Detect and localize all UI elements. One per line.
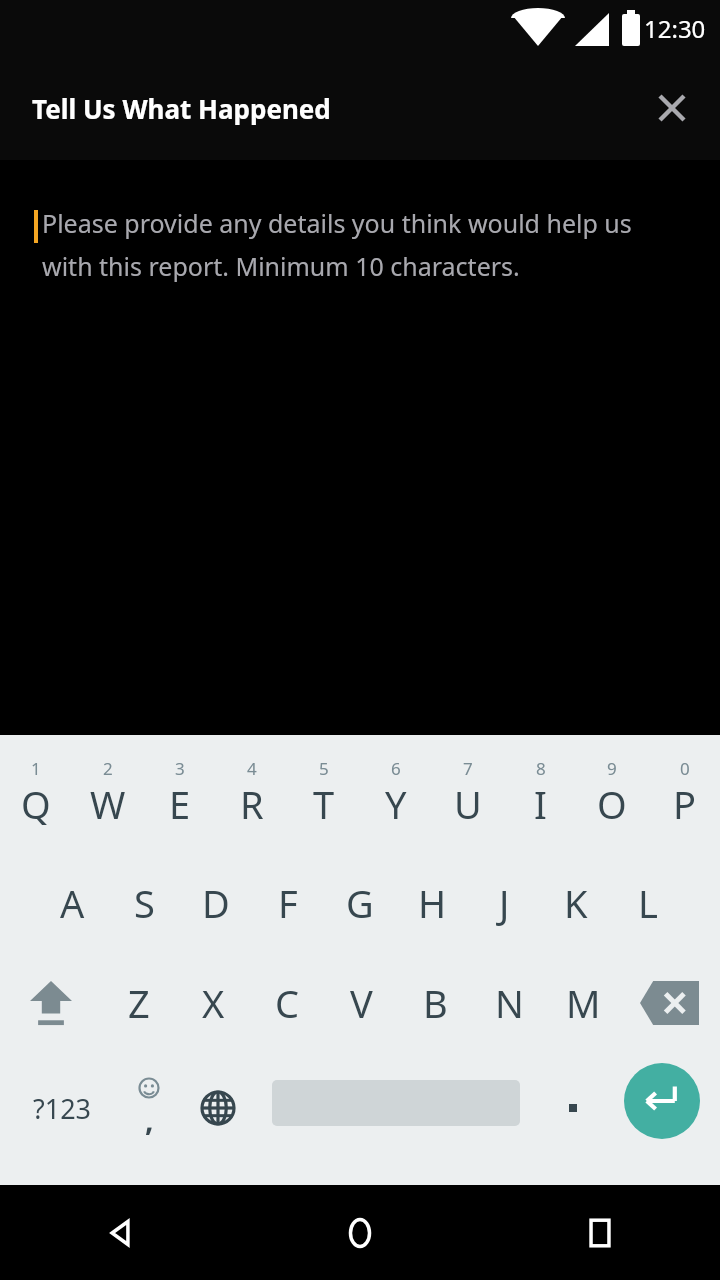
button[interactable]: V <box>324 953 398 1053</box>
staticText: 1 <box>31 757 41 780</box>
button[interactable]: Period <box>540 1053 606 1163</box>
button[interactable]: 4 <box>216 735 288 853</box>
button[interactable]: Backspace <box>620 953 720 1053</box>
button[interactable]: Home <box>240 1185 480 1280</box>
staticText: E <box>169 778 191 830</box>
button[interactable]: Change language <box>186 1053 250 1163</box>
button[interactable]: 1 <box>0 735 72 853</box>
button[interactable]: 5 <box>288 735 360 853</box>
staticText: O <box>597 778 627 830</box>
staticText: 9 <box>607 757 617 780</box>
staticText: 5 <box>319 757 329 780</box>
staticText: T <box>313 778 335 830</box>
staticText: A <box>60 877 85 929</box>
staticText: J <box>499 877 510 929</box>
button[interactable]: D <box>180 853 252 953</box>
button[interactable]: ?123 <box>6 1053 118 1163</box>
button[interactable]: Back <box>0 1185 240 1280</box>
staticText: W <box>90 778 126 830</box>
staticText: Z <box>128 977 150 1029</box>
staticText: , <box>145 1099 154 1140</box>
button[interactable]: L <box>612 853 684 953</box>
button[interactable]: 2 <box>72 735 144 853</box>
staticText: Q <box>21 778 51 830</box>
button[interactable]: B <box>398 953 472 1053</box>
staticText: C <box>275 977 300 1029</box>
button[interactable]: 0 <box>648 735 720 853</box>
button[interactable]: 7 <box>432 735 504 853</box>
staticText: 2 <box>103 757 113 780</box>
staticText: F <box>278 877 298 929</box>
button[interactable]: Recent apps <box>480 1185 720 1280</box>
button[interactable]: Enter <box>624 1063 700 1139</box>
staticText: G <box>346 877 374 929</box>
staticText: ?123 <box>33 1090 92 1127</box>
staticText: U <box>454 778 482 830</box>
staticText: D <box>202 877 230 929</box>
staticText: R <box>240 778 264 830</box>
button[interactable]: Z <box>101 953 176 1053</box>
button[interactable]: N <box>472 953 546 1053</box>
staticText: 0 <box>680 757 690 780</box>
staticText: 7 <box>463 757 473 780</box>
staticText: 3 <box>175 757 185 780</box>
staticText: M <box>566 977 601 1029</box>
staticText: V <box>350 977 373 1029</box>
button[interactable]: Comma <box>118 1053 180 1163</box>
button[interactable]: X <box>176 953 250 1053</box>
button[interactable]: C <box>250 953 324 1053</box>
staticText: B <box>423 977 448 1029</box>
staticText: Y <box>385 778 407 830</box>
staticText: K <box>564 877 588 929</box>
button[interactable]: 8 <box>504 735 576 853</box>
staticText: L <box>638 877 658 929</box>
staticText: 6 <box>391 757 401 780</box>
button[interactable]: G <box>324 853 396 953</box>
button[interactable]: A <box>36 853 108 953</box>
button[interactable]: Shift <box>0 953 101 1053</box>
staticText: I <box>534 778 547 830</box>
staticText: 4 <box>247 757 257 780</box>
staticText: 12:30 <box>644 12 706 45</box>
staticText: Please provide any details you think wou… <box>42 206 658 283</box>
staticText: 8 <box>536 757 546 780</box>
staticText: S <box>134 877 155 929</box>
button[interactable]: J <box>468 853 540 953</box>
staticText: N <box>495 977 524 1029</box>
staticText: X <box>202 977 225 1029</box>
button[interactable]: M <box>546 953 620 1053</box>
button[interactable]: Close <box>646 82 698 134</box>
button[interactable]: Please provide any details you think wou… <box>0 160 720 735</box>
staticText: Tell Us What Happened <box>32 91 331 126</box>
staticText: H <box>418 877 447 929</box>
button[interactable]: S <box>108 853 180 953</box>
button[interactable]: 6 <box>360 735 432 853</box>
button[interactable]: K <box>540 853 612 953</box>
staticText: P <box>673 778 696 830</box>
button[interactable]: F <box>252 853 324 953</box>
button[interactable]: 9 <box>576 735 648 853</box>
button[interactable]: H <box>396 853 468 953</box>
button[interactable]: 3 <box>144 735 216 853</box>
